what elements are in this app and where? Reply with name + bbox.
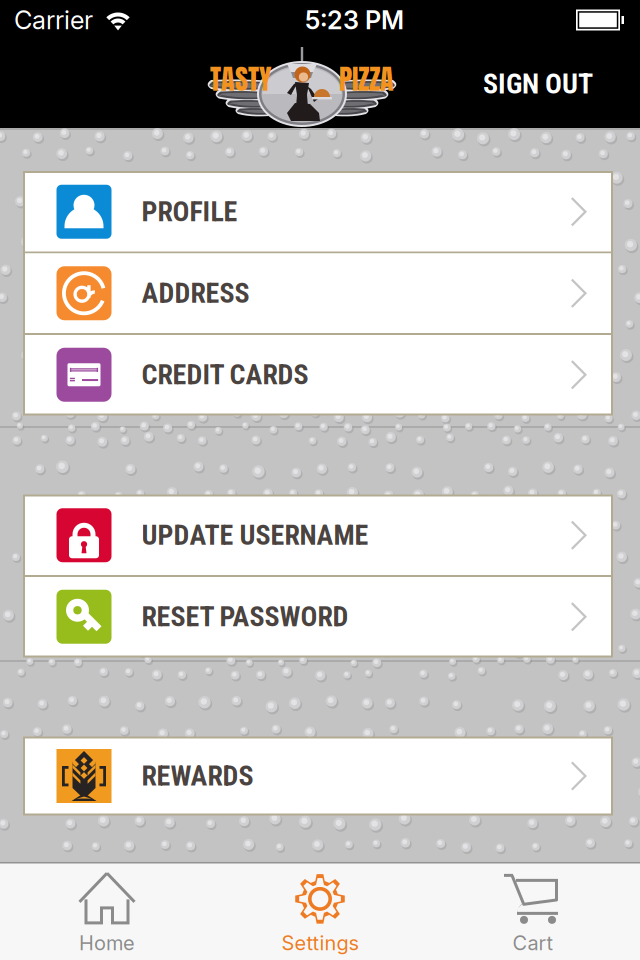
button[interactable]: SIGN OUT xyxy=(458,40,618,128)
button[interactable]: CREDIT CARDS xyxy=(24,335,612,414)
staticText: SIGN OUT xyxy=(483,68,593,100)
staticText: TASTY xyxy=(210,58,271,100)
staticText: Carrier xyxy=(14,5,93,35)
staticText: RESET PASSWORD xyxy=(141,600,348,633)
staticText: 5:23 PM xyxy=(305,5,404,35)
button[interactable]: REWARDS xyxy=(24,737,612,814)
button[interactable]: Cart xyxy=(426,862,639,960)
button[interactable]: UPDATE USERNAME xyxy=(24,495,612,575)
button[interactable]: Home xyxy=(0,862,213,960)
button[interactable]: Settings xyxy=(213,862,426,960)
staticText: CREDIT CARDS xyxy=(141,358,308,391)
button[interactable]: ADDRESS xyxy=(24,253,612,333)
staticText: Settings xyxy=(281,931,358,955)
staticText: REWARDS xyxy=(141,760,253,792)
button[interactable]: PROFILE xyxy=(24,172,612,251)
staticText: UPDATE USERNAME xyxy=(141,519,368,552)
staticText: PIZZA xyxy=(339,58,394,100)
staticText: PROFILE xyxy=(141,195,237,228)
staticText: ADDRESS xyxy=(141,277,249,310)
staticText: Cart xyxy=(512,931,553,955)
button[interactable]: RESET PASSWORD xyxy=(24,577,612,656)
staticText: Home xyxy=(79,931,135,955)
